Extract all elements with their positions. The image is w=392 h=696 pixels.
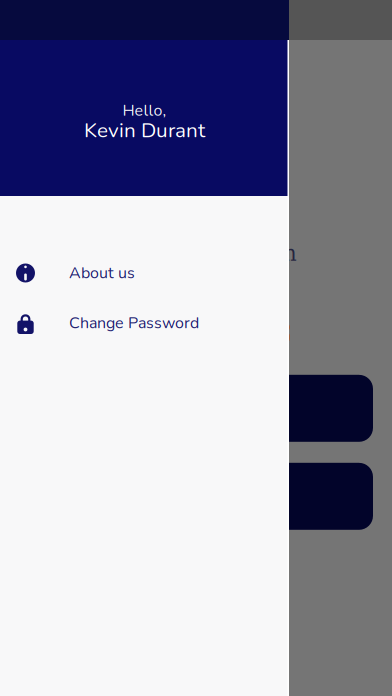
staticText: Hello, — [122, 100, 166, 121]
staticText: Change Password — [69, 312, 199, 334]
staticText: About us — [69, 262, 135, 284]
staticText: Kevin Durant — [84, 116, 205, 145]
button[interactable]: Change Password — [0, 298, 289, 348]
staticText: in — [276, 241, 297, 266]
button[interactable]: About us — [0, 248, 289, 298]
